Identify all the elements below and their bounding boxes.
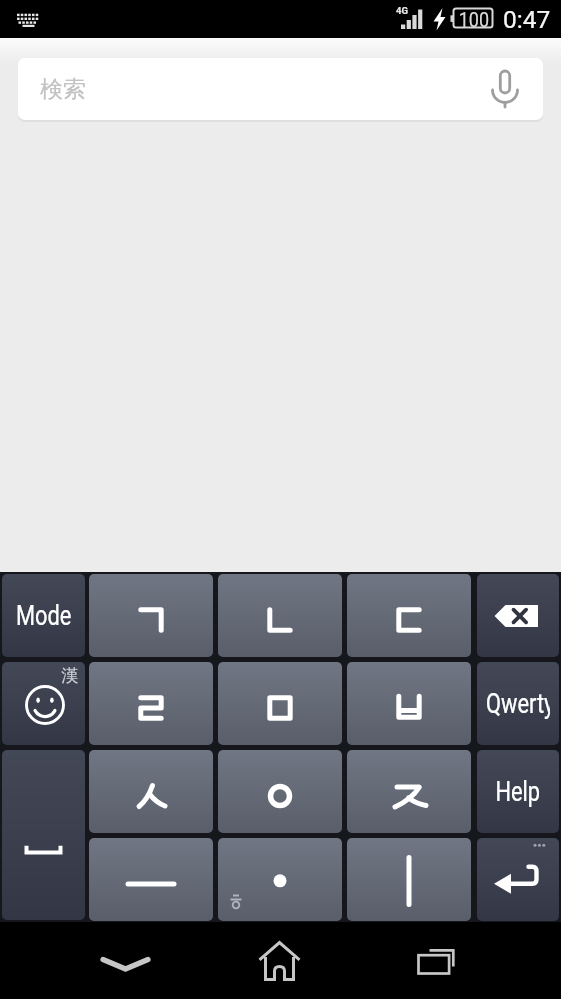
button[interactable]: 検索 — [18, 58, 543, 120]
button[interactable] — [218, 574, 342, 657]
button[interactable] — [89, 662, 213, 745]
button[interactable]: Help — [477, 750, 559, 833]
staticText: 4G — [396, 5, 408, 16]
button[interactable]: 漢 — [2, 662, 85, 745]
button[interactable] — [2, 750, 85, 920]
staticText: 検索 — [40, 75, 86, 104]
button[interactable] — [218, 838, 342, 921]
button[interactable] — [477, 574, 559, 657]
button[interactable] — [347, 838, 471, 921]
button[interactable] — [218, 662, 342, 745]
button[interactable]: Mode — [2, 574, 85, 657]
button[interactable] — [89, 574, 213, 657]
button[interactable] — [85, 925, 165, 999]
button[interactable] — [89, 838, 213, 921]
button[interactable] — [240, 925, 320, 999]
button[interactable] — [477, 838, 559, 921]
staticText: 0:47 — [503, 5, 551, 34]
button[interactable]: Qwerty — [477, 662, 559, 745]
button[interactable] — [347, 662, 471, 745]
staticText: 漢 — [61, 665, 78, 686]
staticText: Mode — [16, 599, 72, 632]
staticText: Qwerty — [486, 687, 550, 720]
button[interactable] — [395, 925, 475, 999]
staticText: 100 — [459, 8, 489, 27]
button[interactable] — [89, 750, 213, 833]
button[interactable] — [347, 750, 471, 833]
button[interactable] — [347, 574, 471, 657]
button[interactable] — [218, 750, 342, 833]
staticText: Help — [495, 775, 541, 808]
